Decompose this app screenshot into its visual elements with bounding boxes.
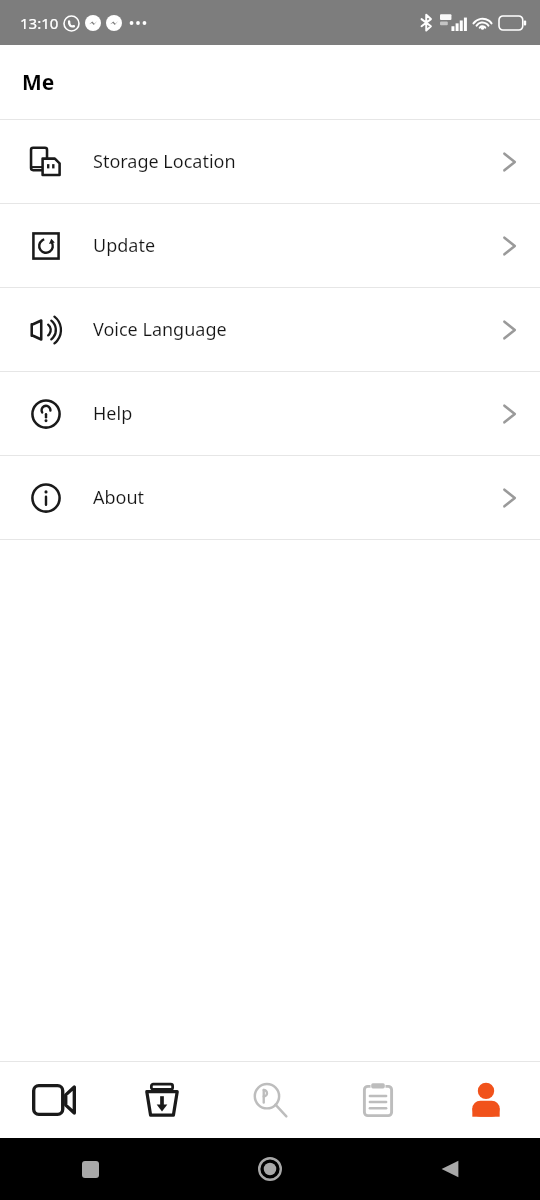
- button[interactable]: Voice Language: [0, 288, 540, 371]
- button[interactable]: Recents: [0, 1138, 180, 1200]
- button[interactable]: Parking search: [216, 1062, 324, 1138]
- button[interactable]: Help: [0, 372, 540, 455]
- staticText: About: [93, 485, 145, 510]
- staticText: Storage Location: [93, 149, 236, 174]
- staticText: Me: [22, 68, 55, 97]
- button[interactable]: Update: [0, 204, 540, 287]
- button[interactable]: Records: [324, 1062, 432, 1138]
- button[interactable]: Video: [0, 1062, 108, 1138]
- button[interactable]: Home: [180, 1138, 360, 1200]
- staticText: Update: [93, 233, 156, 258]
- button[interactable]: Back: [360, 1138, 540, 1200]
- button[interactable]: Storage Location: [0, 120, 540, 203]
- staticText: 13:10: [20, 13, 59, 33]
- button[interactable]: Downloads: [108, 1062, 216, 1138]
- button[interactable]: Me: [432, 1062, 540, 1138]
- button[interactable]: About: [0, 456, 540, 539]
- staticText: Voice Language: [93, 317, 227, 342]
- staticText: Help: [93, 401, 133, 426]
